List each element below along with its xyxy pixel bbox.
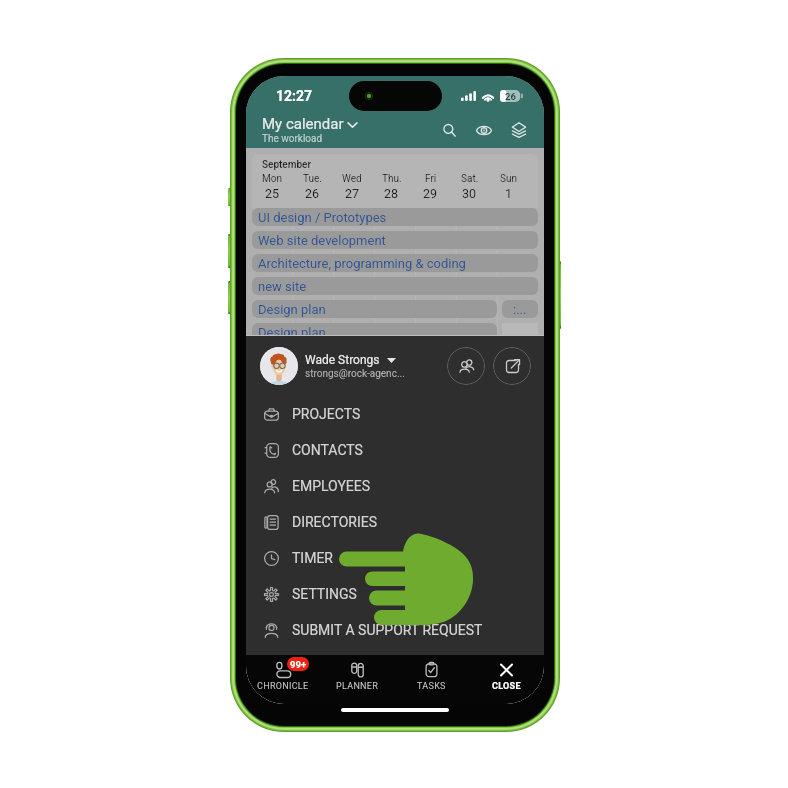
button[interactable]: :... (502, 300, 538, 318)
button[interactable]: Invite people (447, 347, 485, 385)
button[interactable]: SETTINGS (246, 576, 544, 612)
staticText: 26 (505, 91, 516, 102)
staticText: Web site development (258, 233, 386, 248)
staticText: EMPLOYEES (292, 478, 371, 494)
button[interactable]: Design plan (252, 323, 497, 341)
staticText: SETTINGS (292, 586, 357, 602)
staticText: Design plan (258, 302, 326, 317)
staticText: 28 (384, 186, 399, 201)
button[interactable]: View (471, 117, 497, 143)
button[interactable]: 99+ (246, 655, 320, 704)
button[interactable]: PLANNER (320, 655, 394, 704)
button[interactable]: My calendar (262, 115, 436, 145)
button[interactable]: Search (436, 117, 462, 143)
button[interactable]: PROJECTS (246, 396, 544, 432)
staticText: Fri (425, 173, 437, 185)
staticText: 30 (462, 186, 477, 201)
button[interactable]: Design plan (252, 300, 497, 318)
staticText: SUBMIT A SUPPORT REQUEST (292, 622, 483, 638)
staticText: Sat. (461, 173, 479, 185)
button[interactable]: Wade Strongs (305, 353, 447, 380)
staticText: Design plan (258, 325, 326, 340)
staticText: CONTACTS (292, 442, 363, 458)
button[interactable]: CLOSE (469, 655, 544, 704)
staticText: Thu. (382, 173, 402, 185)
staticText: TASKS (417, 681, 446, 692)
staticText: 26 (305, 186, 320, 201)
staticText: Wed (342, 173, 362, 185)
button[interactable]: Layers (506, 117, 532, 143)
staticText: Tue. (303, 173, 322, 185)
button[interactable]: new site (252, 277, 538, 295)
staticText: The workload (262, 133, 323, 145)
button[interactable]: Architecture, programming & coding (252, 254, 538, 272)
staticText: new site (258, 279, 307, 294)
staticText: PROJECTS (292, 406, 361, 422)
staticText: CLOSE (492, 681, 521, 692)
staticText: :... (513, 302, 527, 317)
button[interactable]: TIMER (246, 540, 544, 576)
staticText: PLANNER (336, 681, 379, 692)
button[interactable]: Open in browser (493, 347, 531, 385)
staticText: My calendar (262, 115, 344, 133)
staticText: 25 (265, 186, 280, 201)
staticText: 12:27 (276, 88, 313, 104)
staticText: DIRECTORIES (292, 514, 377, 530)
button[interactable]: UI design / Prototypes (252, 208, 538, 226)
staticText: UI design / Prototypes (258, 210, 387, 225)
staticText: Wade Strongs (305, 353, 380, 367)
staticText: Mon (262, 173, 282, 185)
staticText: CHRONICLE (257, 681, 309, 692)
staticText: strongs@rock-agenc... (305, 368, 405, 380)
staticText: 1 (505, 186, 513, 201)
button[interactable]: DIRECTORIES (246, 504, 544, 540)
button[interactable]: Web site development (252, 231, 538, 249)
staticText: 99+ (290, 659, 307, 670)
button[interactable]: SUBMIT A SUPPORT REQUEST (246, 612, 544, 648)
button[interactable]: EMPLOYEES (246, 468, 544, 504)
button[interactable] (260, 347, 298, 385)
staticText: TIMER (292, 550, 333, 566)
staticText: 29 (423, 186, 438, 201)
staticText: 27 (345, 186, 360, 201)
staticText: Architecture, programming & coding (258, 256, 466, 271)
button[interactable]: TASKS (394, 655, 469, 704)
button[interactable]: CONTACTS (246, 432, 544, 468)
staticText: September (262, 159, 311, 171)
staticText: Sun (500, 173, 517, 185)
